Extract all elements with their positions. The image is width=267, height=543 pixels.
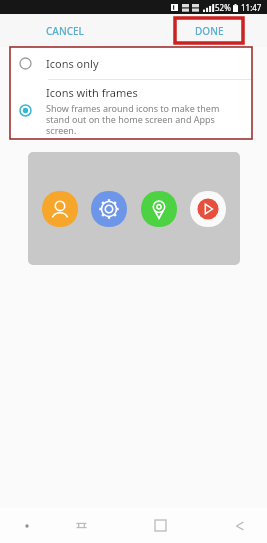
button[interactable]: Icons only [0, 47, 267, 79]
button[interactable]: Maps app icon [141, 191, 177, 227]
button[interactable]: Contacts app icon [42, 191, 78, 227]
staticText: 11:47 [241, 2, 262, 13]
button[interactable]: Icons with frames [0, 80, 267, 140]
button[interactable]: CANCEL [36, 18, 94, 44]
staticText: DONE [195, 24, 224, 38]
button[interactable]: Home [133, 508, 187, 543]
staticText: 52% [215, 2, 231, 13]
staticText: Show frames around icons to make them st… [46, 102, 245, 136]
staticText: CANCEL [46, 24, 84, 38]
button[interactable]: Back [213, 508, 267, 543]
button[interactable]: Recent apps [54, 508, 108, 543]
button[interactable]: Play Movies app icon [190, 191, 226, 227]
button[interactable]: Settings app icon [91, 191, 127, 227]
button[interactable]: Show keyboard [0, 508, 54, 543]
staticText: Icons with frames [46, 85, 138, 100]
staticText: Icons only [46, 56, 99, 71]
button[interactable]: DONE [175, 18, 243, 43]
